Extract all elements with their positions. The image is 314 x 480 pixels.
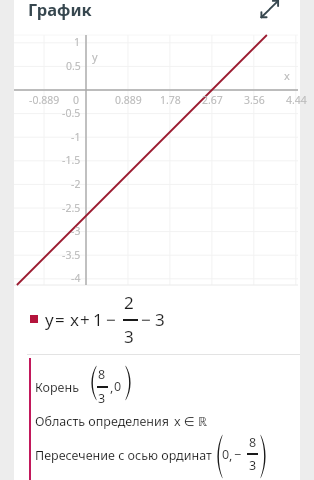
- staticText: 1: [74, 35, 81, 49]
- staticText: 8: [98, 366, 106, 383]
- staticText: -3.5: [62, 248, 81, 262]
- staticText: 8: [249, 434, 257, 451]
- staticText: Корень: [35, 379, 79, 396]
- staticText: 3: [155, 308, 165, 331]
- staticText: y: [92, 49, 98, 64]
- button[interactable]: [14, 0, 254, 23]
- staticText: Пересечение с осью ординат: [35, 447, 212, 464]
- staticText: 1: [93, 308, 103, 331]
- button[interactable]: [30, 434, 298, 480]
- staticText: 0: [73, 93, 80, 107]
- staticText: -1: [71, 130, 81, 144]
- staticText: ,: [110, 379, 114, 396]
- staticText: x: [70, 308, 79, 331]
- staticText: +: [80, 308, 90, 331]
- staticText: 0: [222, 446, 230, 463]
- staticText: ,: [229, 447, 233, 464]
- staticText: 1.78: [160, 93, 181, 107]
- staticText: x ∈ ℝ: [174, 413, 207, 430]
- staticText: 0.5: [66, 59, 81, 73]
- staticText: -0.889: [29, 93, 60, 107]
- staticText: 2: [124, 291, 134, 314]
- button[interactable]: [30, 358, 298, 400]
- staticText: 3: [98, 390, 106, 407]
- staticText: -3: [71, 224, 81, 238]
- staticText: 0.889: [115, 93, 142, 107]
- staticText: 3: [249, 457, 257, 474]
- staticText: Область определения: [35, 413, 170, 430]
- staticText: -4: [71, 271, 81, 285]
- staticText: =: [55, 308, 65, 331]
- staticText: −: [234, 446, 242, 463]
- staticText: −: [141, 308, 151, 331]
- staticText: -2.5: [62, 201, 81, 215]
- staticText: -2: [71, 177, 81, 191]
- staticText: x: [284, 68, 290, 83]
- staticText: 0: [114, 378, 122, 395]
- button[interactable]: Expand: [261, 0, 283, 19]
- staticText: 3.56: [244, 93, 265, 107]
- staticText: График: [28, 0, 92, 20]
- staticText: y: [45, 308, 54, 331]
- button[interactable]: [30, 404, 298, 434]
- staticText: 3: [124, 325, 134, 348]
- staticText: -0.5: [62, 106, 81, 120]
- staticText: -1.5: [62, 153, 81, 167]
- staticText: −: [106, 308, 116, 331]
- staticText: 2.67: [202, 93, 223, 107]
- staticText: 4.44: [286, 93, 307, 107]
